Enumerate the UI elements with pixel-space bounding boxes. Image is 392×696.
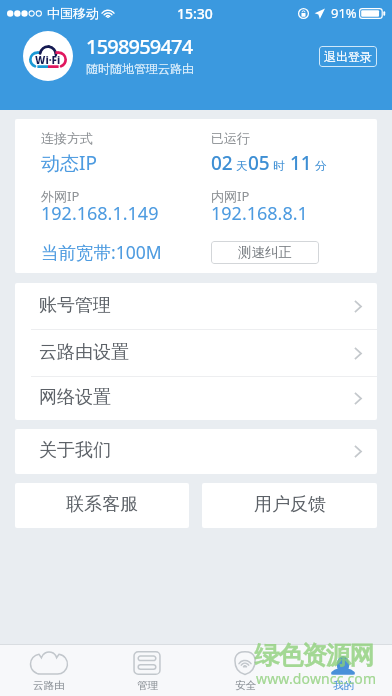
staticText: 动态IP xyxy=(41,150,97,176)
staticText: 192.168.1.149 xyxy=(41,201,159,226)
staticText: 我的 xyxy=(333,679,354,692)
staticText: 用户反馈 xyxy=(254,493,326,516)
staticText: 分 xyxy=(312,158,327,174)
staticText: 当前宽带:100M xyxy=(41,240,162,264)
button[interactable]: 用户反馈 xyxy=(202,483,377,528)
button[interactable]: 管理 xyxy=(98,645,196,696)
staticText: 联系客服 xyxy=(66,493,138,516)
staticText: 天 xyxy=(233,158,248,174)
staticText: 管理 xyxy=(137,679,158,692)
button[interactable]: 关于我们 xyxy=(15,429,377,474)
staticText: 时 xyxy=(270,158,285,174)
staticText: 02 xyxy=(211,150,233,176)
staticText: 退出登录 xyxy=(324,49,372,64)
button[interactable]: 退出登录 xyxy=(319,46,377,67)
staticText: 账号管理 xyxy=(39,294,354,317)
button[interactable]: 联系客服 xyxy=(15,483,189,528)
staticText: 云路由设置 xyxy=(39,341,354,364)
staticText: Wi·Fi xyxy=(35,53,61,67)
staticText: 云路由 xyxy=(33,679,65,692)
staticText: 关于我们 xyxy=(39,439,354,462)
staticText: 随时随地管理云路由 xyxy=(86,61,194,76)
button[interactable]: 安全 xyxy=(196,645,294,696)
staticText: 安全 xyxy=(235,679,256,692)
staticText: 已运行 xyxy=(211,130,250,146)
staticText: 测速纠正 xyxy=(238,244,292,261)
staticText: 内网IP xyxy=(211,187,250,205)
staticText: 1598959474 xyxy=(86,33,193,60)
button[interactable]: 网络设置 xyxy=(15,377,377,420)
staticText: 11 xyxy=(285,150,312,176)
button[interactable]: 云路由 xyxy=(0,645,98,696)
staticText: 外网IP xyxy=(41,187,80,205)
staticText: 中国移动 xyxy=(47,5,99,21)
staticText: www.downcc.com xyxy=(256,669,377,688)
button[interactable]: 测速纠正 xyxy=(211,241,319,264)
staticText: 05 xyxy=(248,150,270,176)
staticText: 绿色资源网 xyxy=(255,640,374,671)
staticText: 15:30 xyxy=(177,4,213,23)
staticText: 连接方式 xyxy=(41,130,93,146)
button[interactable]: 我的 xyxy=(294,645,392,696)
button[interactable]: 云路由设置 xyxy=(15,330,377,376)
button[interactable]: 账号管理 xyxy=(15,283,377,329)
staticText: 网络设置 xyxy=(39,386,354,409)
staticText: 192.168.8.1 xyxy=(211,201,308,226)
staticText: 91% xyxy=(331,4,357,22)
